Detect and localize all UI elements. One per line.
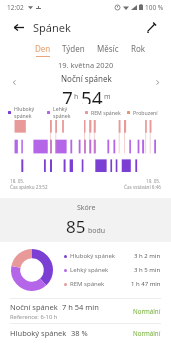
- staticText: Skóre: [77, 203, 96, 213]
- staticText: 54: [81, 86, 103, 104]
- staticText: 1 h 47 min: [131, 280, 161, 288]
- staticText: Rok: [131, 43, 146, 54]
- staticText: Noční spánek: [61, 73, 112, 84]
- staticText: 3 h 5 min: [134, 266, 161, 274]
- staticText: Lehký spánek: [70, 266, 134, 274]
- staticText: Týden: [62, 43, 85, 54]
- staticText: REM spánek: [70, 280, 131, 288]
- button[interactable]: Next day: [149, 74, 165, 90]
- staticText: spánek: [53, 112, 71, 119]
- button[interactable]: Měsíc: [92, 40, 124, 60]
- staticText: 19. 05.: [146, 178, 161, 184]
- staticText: Hluboký spánek: [10, 328, 67, 338]
- button[interactable]: Previous day: [6, 74, 22, 90]
- staticText: Noční spánek: [10, 302, 58, 312]
- staticText: Spánek: [33, 20, 71, 35]
- staticText: m: [104, 92, 111, 102]
- button[interactable]: Týden: [57, 40, 90, 60]
- button[interactable]: Noční spánek: [10, 299, 161, 323]
- staticText: spánek: [14, 112, 32, 119]
- button[interactable]: Rok: [126, 40, 151, 60]
- staticText: h: [74, 92, 79, 102]
- staticText: Lehký: [53, 105, 68, 112]
- staticText: Čas vstávání 6:46: [124, 184, 161, 190]
- staticText: Probuzení: [133, 109, 158, 116]
- staticText: Reference: 6-10 h: [10, 313, 58, 321]
- staticText: 18. 05.: [10, 178, 25, 184]
- button[interactable]: Hluboký spánek: [10, 324, 161, 342]
- staticText: Hluboký: [14, 105, 35, 112]
- staticText: 12:02: [7, 3, 24, 12]
- staticText: 19. května 2020: [58, 60, 114, 70]
- staticText: 3 h 2 min: [134, 252, 161, 260]
- staticText: 7 h 54 min: [62, 302, 99, 312]
- staticText: Normální: [133, 307, 161, 315]
- staticText: Hluboký spánek: [70, 252, 134, 260]
- staticText: 85: [66, 215, 86, 238]
- staticText: Čas spánku 23:52: [10, 184, 48, 190]
- staticText: Den: [35, 43, 51, 54]
- staticText: Měsíc: [97, 43, 119, 54]
- staticText: 100 %: [145, 3, 164, 12]
- staticText: bodu: [88, 226, 106, 236]
- staticText: 38 %: [71, 328, 88, 338]
- button[interactable]: Den: [30, 40, 56, 60]
- button[interactable]: Edit: [141, 17, 161, 37]
- staticText: REM spánek: [91, 109, 121, 116]
- staticText: Normální: [133, 329, 161, 337]
- button[interactable]: Back: [8, 17, 28, 37]
- staticText: 7: [62, 86, 73, 104]
